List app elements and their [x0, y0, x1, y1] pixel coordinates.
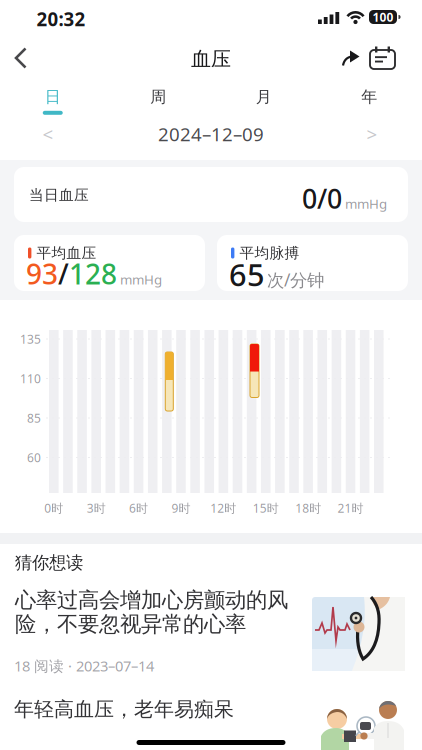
button[interactable]: Previous day	[33, 122, 63, 146]
staticText: 平均脉搏	[239, 244, 299, 262]
button[interactable]: 心率过高会增加心房颤动的风	[0, 582, 422, 682]
staticText: 心率过高会增加心房颤动的风	[15, 587, 288, 613]
staticText: 平均血压	[36, 244, 96, 262]
button[interactable]: Share	[342, 50, 361, 67]
staticText: 险，不要忽视异常的心率	[15, 611, 246, 637]
staticText: 65	[229, 254, 265, 295]
button[interactable]: Records	[369, 46, 396, 70]
staticText: <	[42, 122, 53, 146]
staticText: 135	[20, 331, 41, 347]
button[interactable]: 周	[105, 86, 211, 116]
button[interactable]: 月	[211, 86, 316, 116]
staticText: 93	[26, 255, 58, 292]
staticText: 12时	[210, 500, 236, 516]
staticText: 周	[150, 87, 166, 107]
staticText: 血压	[191, 47, 231, 71]
staticText: 月	[256, 87, 272, 107]
button[interactable]: 日	[0, 86, 105, 116]
staticText: 9时	[171, 500, 190, 516]
staticText: mmHg	[117, 270, 162, 288]
button[interactable]: Next day	[357, 122, 387, 146]
staticText: 2024–12–09	[158, 122, 264, 146]
staticText: >	[366, 122, 377, 146]
staticText: 100	[372, 9, 393, 25]
staticText: 6时	[129, 500, 148, 516]
staticText: mmHg	[345, 195, 387, 212]
staticText: 20:32	[36, 7, 85, 31]
staticText: 3时	[87, 500, 106, 516]
staticText: 日	[45, 87, 61, 107]
staticText: 60	[27, 449, 41, 465]
staticText: 128	[69, 255, 117, 292]
staticText: 18 阅读 · 2023–07–14	[14, 656, 154, 675]
staticText: 21时	[337, 500, 363, 516]
staticText: 85	[27, 410, 41, 426]
staticText: 0/0	[302, 181, 342, 216]
staticText: 年轻高血压，老年易痴呆	[14, 697, 234, 722]
staticText: 次/分钟	[267, 268, 324, 291]
button[interactable]: 年	[316, 86, 422, 116]
staticText: 年	[361, 87, 377, 107]
staticText: 猜你想读	[15, 552, 83, 573]
staticText: 110	[20, 370, 41, 386]
staticText: /	[58, 255, 69, 292]
staticText: 18时	[295, 500, 321, 516]
staticText: 当日血压	[29, 186, 89, 204]
button[interactable]: 年轻高血压，老年易痴呆	[0, 682, 422, 750]
button[interactable]: Back	[12, 47, 36, 69]
staticText: 15时	[253, 500, 279, 516]
staticText: 0时	[44, 500, 63, 516]
